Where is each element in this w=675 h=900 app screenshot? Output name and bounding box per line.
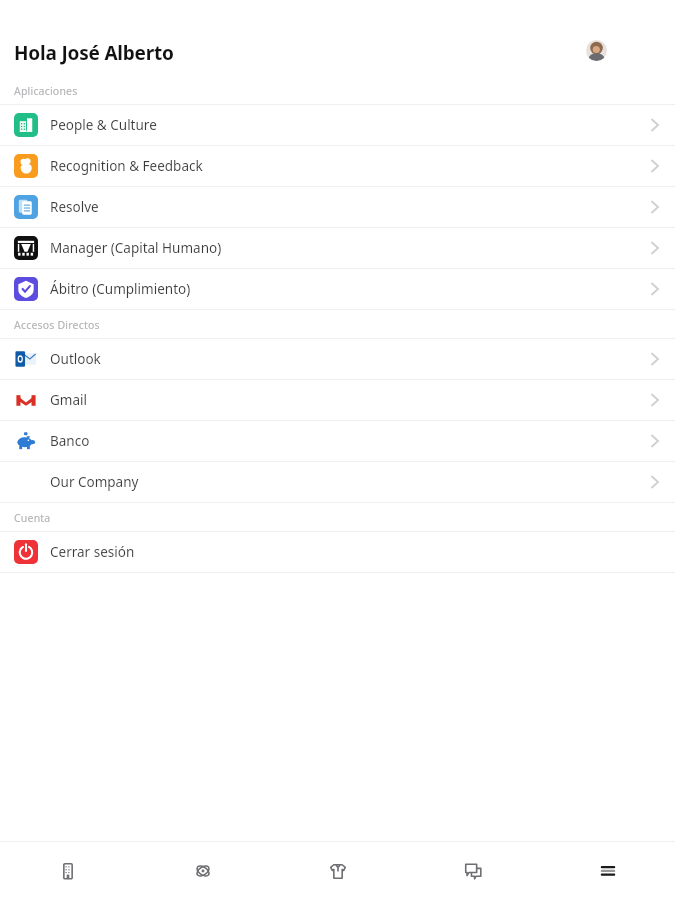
staticText: Manager (Capital Humano) bbox=[50, 239, 643, 257]
button[interactable]: Resolve bbox=[0, 187, 675, 227]
button[interactable]: Perfil bbox=[586, 40, 607, 61]
staticText: People & Culture bbox=[50, 116, 643, 134]
staticText: Our Company bbox=[50, 473, 643, 491]
staticText: Cuenta bbox=[14, 511, 51, 525]
button[interactable]: Mensajes bbox=[405, 842, 540, 900]
staticText: Outlook bbox=[50, 350, 643, 368]
staticText: Hola José Alberto bbox=[14, 40, 174, 66]
button[interactable]: Tienda bbox=[270, 842, 405, 900]
staticText: Resolve bbox=[50, 198, 643, 216]
button[interactable]: Manager (Capital Humano) bbox=[0, 228, 675, 268]
button[interactable]: Innovación bbox=[135, 842, 270, 900]
button[interactable]: Our Company bbox=[0, 462, 675, 502]
button[interactable]: Cerrar sesión bbox=[0, 532, 675, 572]
button[interactable]: Menú bbox=[540, 842, 675, 900]
staticText: Banco bbox=[50, 432, 643, 450]
button[interactable]: Outlook bbox=[0, 339, 675, 379]
staticText: Cerrar sesión bbox=[50, 543, 643, 561]
button[interactable]: Ábitro (Cumplimiento) bbox=[0, 269, 675, 309]
staticText: Gmail bbox=[50, 391, 643, 409]
staticText: Recognition & Feedback bbox=[50, 157, 643, 175]
button[interactable]: People & Culture bbox=[0, 105, 675, 145]
staticText: Ábitro (Cumplimiento) bbox=[50, 280, 643, 298]
button[interactable]: Gmail bbox=[0, 380, 675, 420]
button[interactable]: Empresa bbox=[0, 842, 135, 900]
button[interactable]: Banco bbox=[0, 421, 675, 461]
staticText: Accesos Directos bbox=[14, 318, 100, 332]
staticText: Aplicaciones bbox=[14, 84, 78, 98]
button[interactable]: Recognition & Feedback bbox=[0, 146, 675, 186]
